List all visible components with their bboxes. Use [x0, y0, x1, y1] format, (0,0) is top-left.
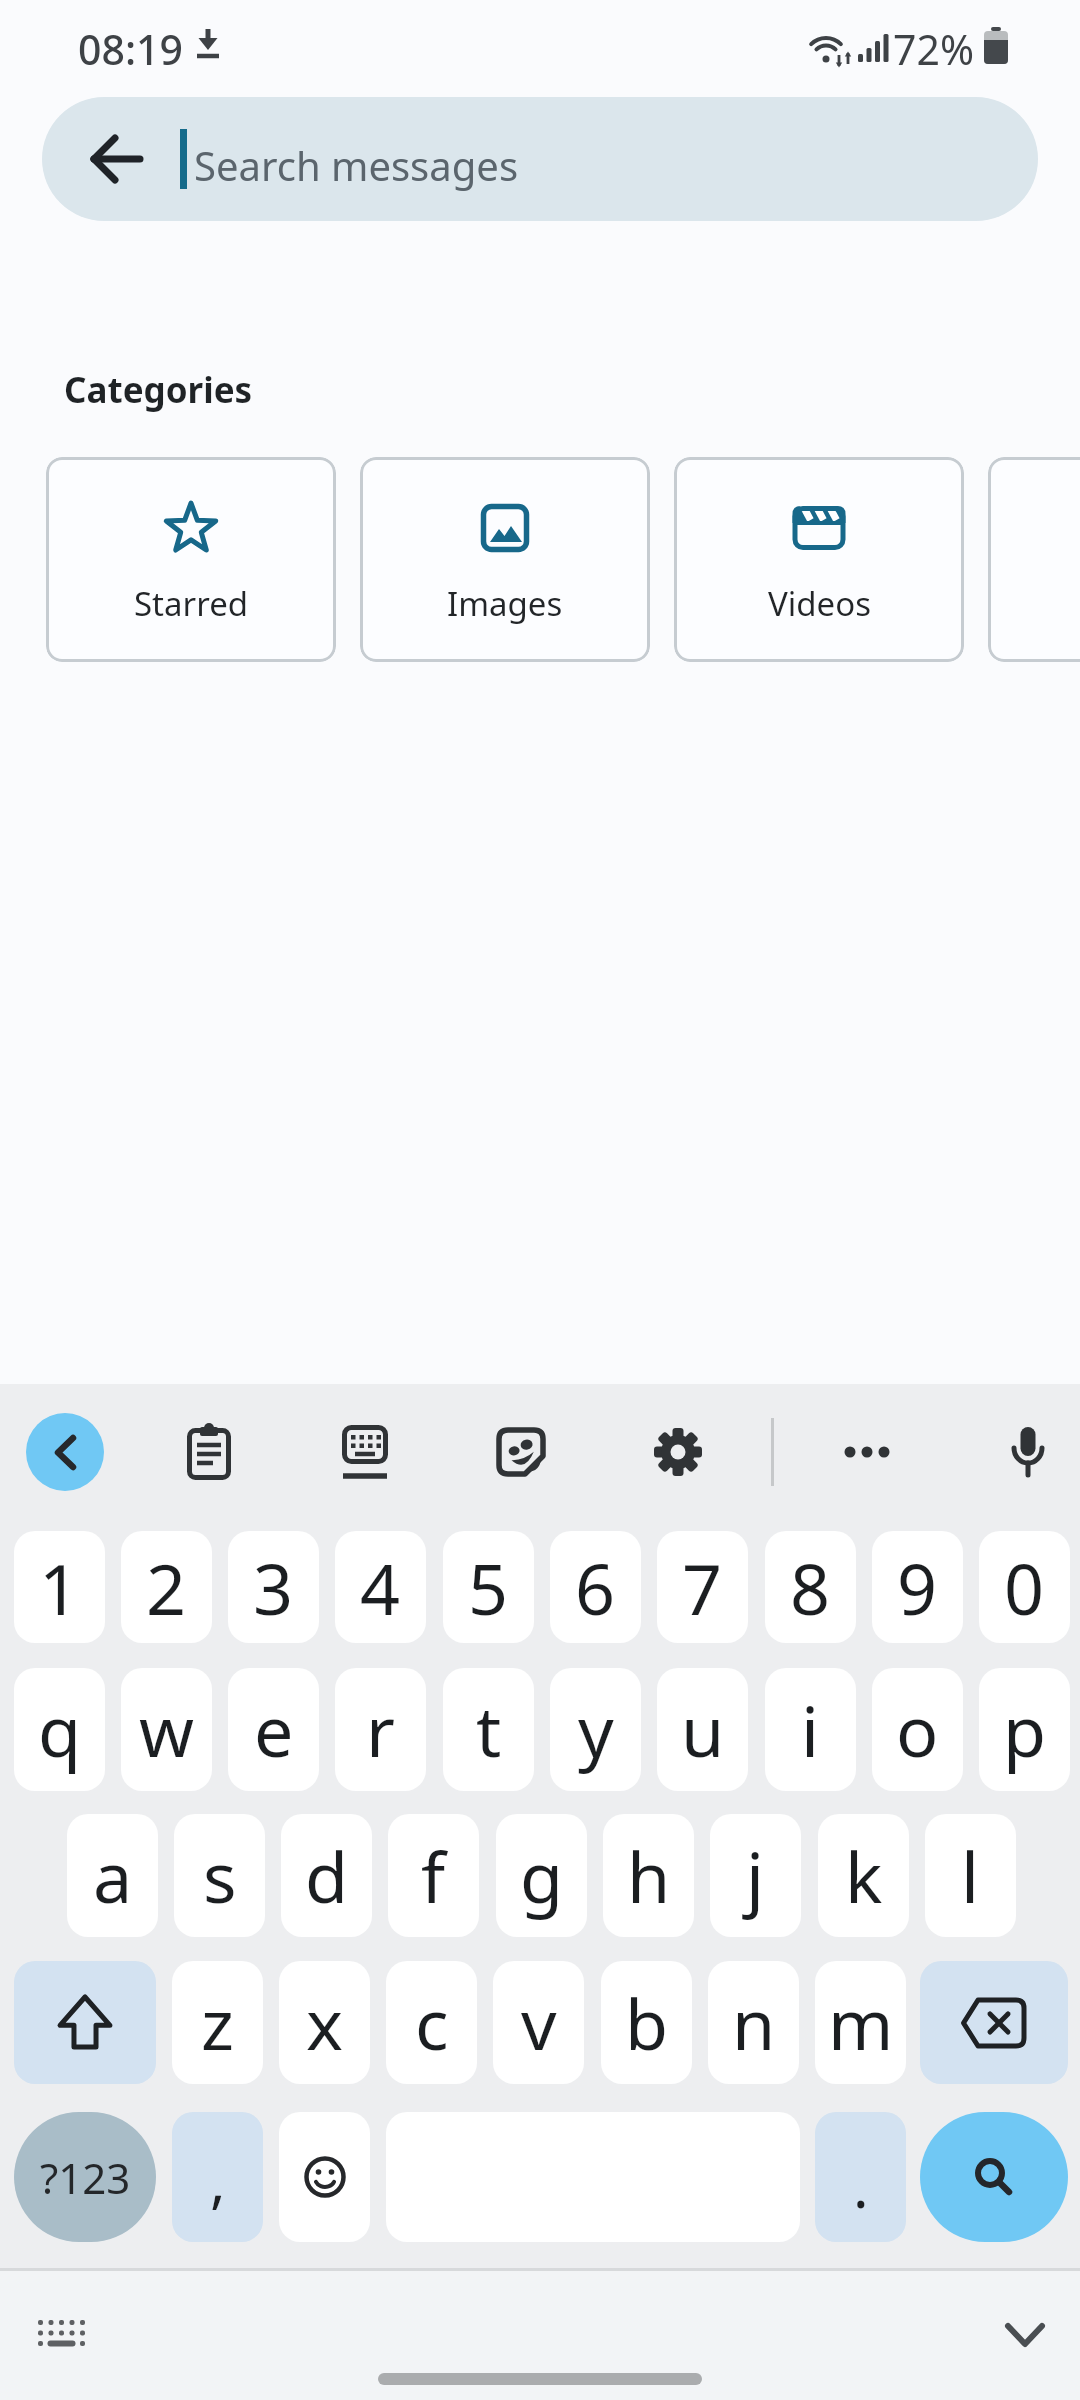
button[interactable]: ?123	[14, 2112, 156, 2242]
button[interactable]: 9	[872, 1531, 963, 1643]
button[interactable]: x	[279, 1961, 370, 2084]
button[interactable]	[42, 97, 1038, 221]
button[interactable]: v	[493, 1961, 584, 2084]
staticText: 8	[790, 1540, 831, 1635]
staticText: Search messages	[194, 138, 519, 192]
button[interactable]: n	[708, 1961, 799, 2084]
button[interactable]: f	[388, 1814, 479, 1937]
button[interactable]: e	[228, 1668, 319, 1791]
button[interactable]: 4	[335, 1531, 426, 1643]
staticText: u	[681, 1682, 725, 1777]
button[interactable]	[638, 1412, 718, 1492]
button[interactable]: 3	[228, 1531, 319, 1643]
button[interactable]: d	[281, 1814, 372, 1937]
staticText: Videos	[768, 581, 871, 626]
button[interactable]: 6	[550, 1531, 641, 1643]
staticText: y	[578, 1682, 614, 1777]
button[interactable]: t	[443, 1668, 534, 1791]
staticText: e	[254, 1682, 294, 1777]
staticText: p	[1003, 1682, 1047, 1777]
button[interactable]: Images	[360, 457, 650, 662]
button[interactable]: 5	[443, 1531, 534, 1643]
staticText: a	[93, 1828, 133, 1923]
button[interactable]: 1	[14, 1531, 105, 1643]
button[interactable]: h	[603, 1814, 694, 1937]
staticText: o	[896, 1682, 939, 1777]
button[interactable]: s	[174, 1814, 265, 1937]
staticText: b	[625, 1975, 669, 2070]
button[interactable]: j	[710, 1814, 801, 1937]
staticText: 3	[253, 1540, 294, 1635]
button[interactable]	[14, 1961, 156, 2084]
button[interactable]: z	[172, 1961, 263, 2084]
staticText: x	[306, 1975, 344, 2070]
button[interactable]: u	[657, 1668, 748, 1791]
button[interactable]	[279, 2112, 370, 2242]
staticText: j	[746, 1828, 765, 1923]
button[interactable]: 2	[121, 1531, 212, 1643]
staticText: c	[415, 1975, 449, 2070]
staticText: Starred	[134, 581, 249, 626]
staticText: g	[520, 1828, 564, 1923]
staticText: h	[627, 1828, 671, 1923]
button[interactable]	[22, 2300, 102, 2370]
staticText: 0	[1004, 1540, 1045, 1635]
staticText: n	[732, 1975, 776, 2070]
button[interactable]	[988, 1412, 1068, 1492]
button[interactable]: i	[765, 1668, 856, 1791]
button[interactable]: y	[550, 1668, 641, 1791]
staticText: 7	[682, 1540, 723, 1635]
button[interactable]	[920, 1961, 1068, 2084]
staticText: s	[203, 1828, 237, 1923]
button[interactable]: Videos	[674, 457, 964, 662]
staticText: l	[961, 1828, 980, 1923]
staticText: v	[521, 1975, 557, 2070]
staticText: 9	[897, 1540, 938, 1635]
button[interactable]: ,	[172, 2112, 263, 2242]
staticText: z	[201, 1975, 234, 2070]
button[interactable]: q	[14, 1668, 105, 1791]
button[interactable]: r	[335, 1668, 426, 1791]
staticText: .	[853, 2146, 869, 2225]
staticText: 72%	[893, 21, 974, 77]
button[interactable]: o	[872, 1668, 963, 1791]
staticText: t	[476, 1682, 502, 1777]
button[interactable]	[920, 2112, 1068, 2242]
staticText: w	[139, 1682, 195, 1777]
staticText: m	[828, 1975, 894, 2070]
button[interactable]: a	[67, 1814, 158, 1937]
button[interactable]: c	[386, 1961, 477, 2084]
staticText: Categories	[64, 366, 253, 414]
button[interactable]: g	[496, 1814, 587, 1937]
button[interactable]	[169, 1412, 249, 1492]
button[interactable]: p	[979, 1668, 1070, 1791]
staticText: ?123	[40, 2149, 131, 2206]
button[interactable]: Starred	[46, 457, 336, 662]
staticText: d	[305, 1828, 349, 1923]
button[interactable]: b	[601, 1961, 692, 2084]
button[interactable]	[481, 1412, 561, 1492]
button[interactable]: w	[121, 1668, 212, 1791]
button[interactable]: 8	[765, 1531, 856, 1643]
button[interactable]: .	[815, 2112, 906, 2242]
staticText: k	[845, 1828, 883, 1923]
staticText: 4	[360, 1540, 401, 1635]
button[interactable]	[988, 457, 1080, 662]
button[interactable]	[325, 1412, 405, 1492]
button[interactable]: m	[815, 1961, 906, 2084]
staticText: Images	[447, 581, 563, 626]
button[interactable]: 7	[657, 1531, 748, 1643]
staticText: 5	[468, 1540, 509, 1635]
staticText: 08:19	[78, 21, 183, 77]
button[interactable]	[985, 2300, 1065, 2370]
button[interactable]: k	[818, 1814, 909, 1937]
staticText: q	[38, 1682, 82, 1777]
button[interactable]: 0	[979, 1531, 1070, 1643]
staticText: 1	[39, 1540, 80, 1635]
button[interactable]	[26, 1413, 104, 1491]
button[interactable]	[827, 1412, 907, 1492]
staticText: 6	[575, 1540, 616, 1635]
staticText: 2	[146, 1540, 187, 1635]
button[interactable]: l	[925, 1814, 1016, 1937]
